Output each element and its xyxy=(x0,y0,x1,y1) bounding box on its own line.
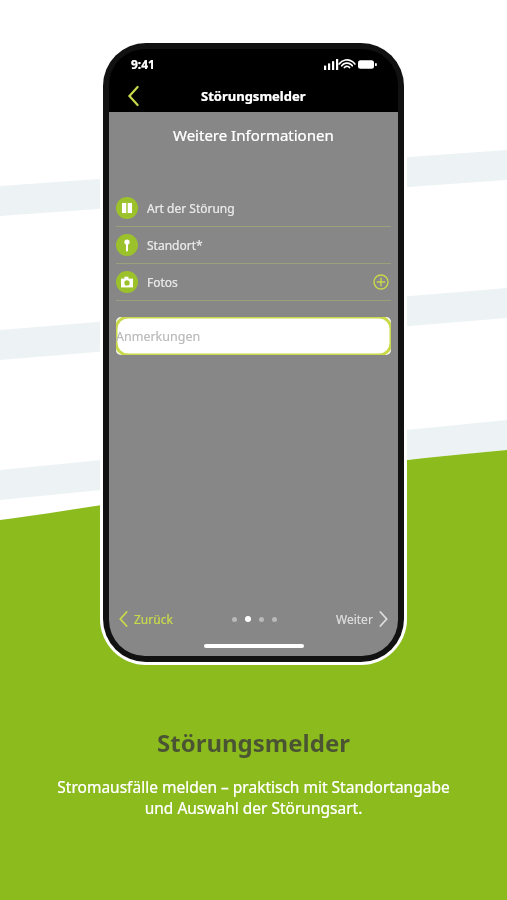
staticText: 9:41 xyxy=(131,56,155,72)
button[interactable]: Fotos xyxy=(109,264,398,300)
button[interactable]: Foto hinzufügen xyxy=(371,272,391,292)
staticText: Anmerkungen xyxy=(116,328,201,345)
staticText: Stromausfälle melden – praktisch mit Sta… xyxy=(57,776,450,819)
staticText: Weitere Informationen xyxy=(173,125,334,145)
staticText: Art der Störung xyxy=(147,200,235,216)
button[interactable]: Anmerkungen xyxy=(116,317,391,355)
button[interactable]: Weiter xyxy=(336,611,388,627)
button[interactable]: Standort* xyxy=(109,227,398,263)
staticText: Standort* xyxy=(147,237,203,253)
staticText: Störungsmelder xyxy=(201,87,306,105)
staticText: Zurück xyxy=(134,611,173,627)
button[interactable]: Zurück xyxy=(117,79,151,112)
button[interactable]: Zurück xyxy=(119,611,173,627)
button[interactable]: Art der Störung xyxy=(109,190,398,226)
staticText: Fotos xyxy=(147,274,178,290)
staticText: Weiter xyxy=(336,611,373,627)
staticText: Störungsmelder xyxy=(157,726,350,759)
